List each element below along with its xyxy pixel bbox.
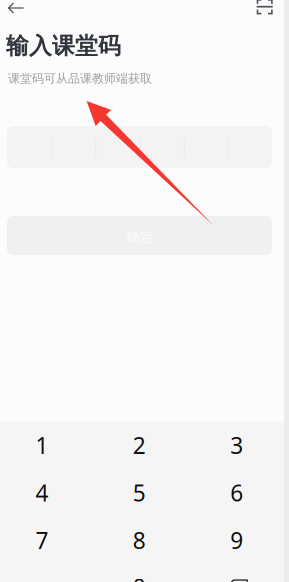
button[interactable]: 3	[189, 421, 284, 469]
button[interactable]: 7	[0, 516, 89, 564]
staticText: 4	[35, 478, 48, 508]
button[interactable]: 9	[189, 516, 284, 564]
staticText: 6	[230, 478, 243, 508]
staticText: 7	[35, 525, 48, 555]
button[interactable]: 2	[92, 421, 187, 469]
button[interactable]: Delete	[188, 563, 285, 582]
staticText: 0	[133, 572, 146, 582]
button[interactable]: 5	[92, 469, 187, 516]
button[interactable]: Back	[0, 0, 32, 20]
staticText: 确定	[126, 229, 152, 245]
staticText: 1	[35, 430, 48, 460]
button[interactable]: 确定	[7, 216, 272, 255]
staticText: 课堂码可从品课教师端获取	[8, 71, 152, 86]
button[interactable]: 0	[92, 563, 187, 582]
staticText: 9	[230, 525, 243, 555]
staticText: 8	[133, 525, 146, 555]
staticText: 5	[133, 478, 146, 508]
staticText: 2	[133, 430, 146, 460]
button[interactable]: 4	[0, 469, 89, 516]
button[interactable]: 8	[92, 516, 187, 564]
button[interactable]: 1	[0, 421, 89, 469]
staticText: 3	[230, 430, 243, 460]
button[interactable]: 6	[189, 469, 284, 516]
button[interactable]: Scan code	[249, 0, 281, 19]
staticText: 输入课堂码	[6, 32, 121, 60]
